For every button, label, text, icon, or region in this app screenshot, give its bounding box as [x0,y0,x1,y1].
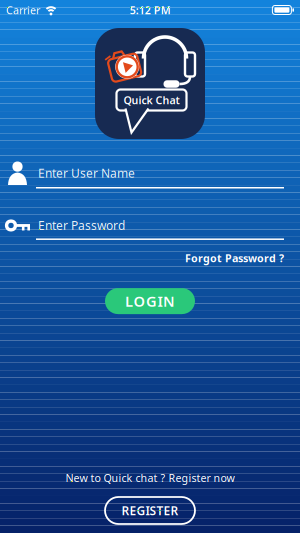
button[interactable]: REGISTER [105,497,195,524]
staticText: Enter Password [38,217,125,233]
staticText: Carrier [6,3,40,17]
staticText: 5:12 PM [130,3,171,17]
button[interactable]: Enter User Name [0,161,300,188]
staticText: Forgot Password ? [185,251,284,265]
staticText: New to Quick chat ? Register now [65,471,234,485]
button[interactable]: LOGIN [105,288,195,314]
button[interactable]: Enter Password [0,217,300,240]
staticText: Enter User Name [38,165,135,181]
staticText: REGISTER [121,502,178,518]
staticText: Quick Chat [123,93,179,107]
staticText: LOGIN [125,291,175,311]
button[interactable]: Forgot Password ? [185,251,284,265]
